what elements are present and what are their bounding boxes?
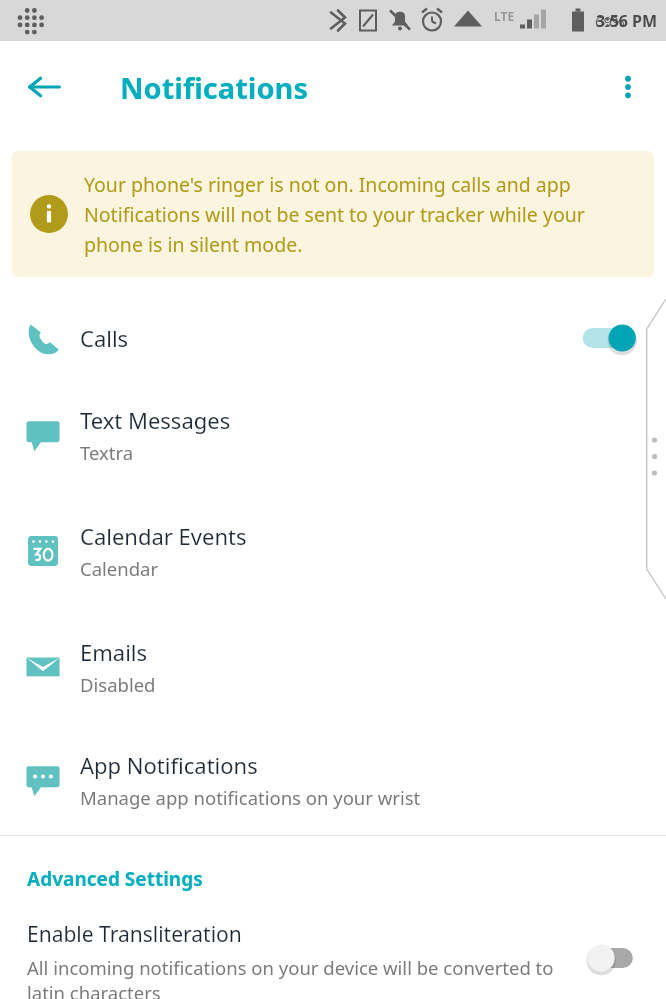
staticText: Disabled — [80, 672, 156, 697]
button[interactable]: Back — [16, 59, 72, 115]
button[interactable]: Enable Transliteration toggle — [580, 938, 646, 978]
staticText: Calendar — [80, 556, 159, 581]
button[interactable]: Calls — [0, 299, 666, 377]
staticText: Your phone's ringer is not on. Incoming … — [84, 171, 638, 257]
staticText: Calls — [80, 323, 129, 353]
staticText: 69% — [595, 11, 625, 31]
staticText: Textra — [80, 440, 134, 465]
button[interactable]: Emails — [0, 609, 666, 725]
staticText: Text Messages — [80, 405, 231, 435]
staticText: All incoming notifications on your devic… — [27, 955, 580, 999]
staticText: Emails — [80, 637, 148, 667]
button[interactable]: More options — [602, 61, 654, 113]
staticText: 3:56 PM — [596, 10, 658, 32]
staticText: App Notifications — [80, 750, 258, 780]
button[interactable]: Text Messages — [0, 377, 666, 493]
staticText: Manage app notifications on your wrist — [80, 785, 421, 810]
button[interactable]: Enable Transliteration — [0, 920, 666, 999]
staticText: LTE — [494, 8, 515, 24]
staticText: Calendar Events — [80, 521, 247, 551]
button[interactable]: Your phone's ringer is not on. Incoming … — [12, 151, 654, 277]
button[interactable]: Calendar Events — [0, 493, 666, 609]
staticText: Notifications — [120, 68, 308, 107]
staticText: Advanced Settings — [27, 866, 203, 892]
button[interactable]: App Notifications — [0, 725, 666, 835]
staticText: Enable Transliteration — [27, 920, 242, 949]
button[interactable]: Calls toggle — [580, 318, 646, 358]
